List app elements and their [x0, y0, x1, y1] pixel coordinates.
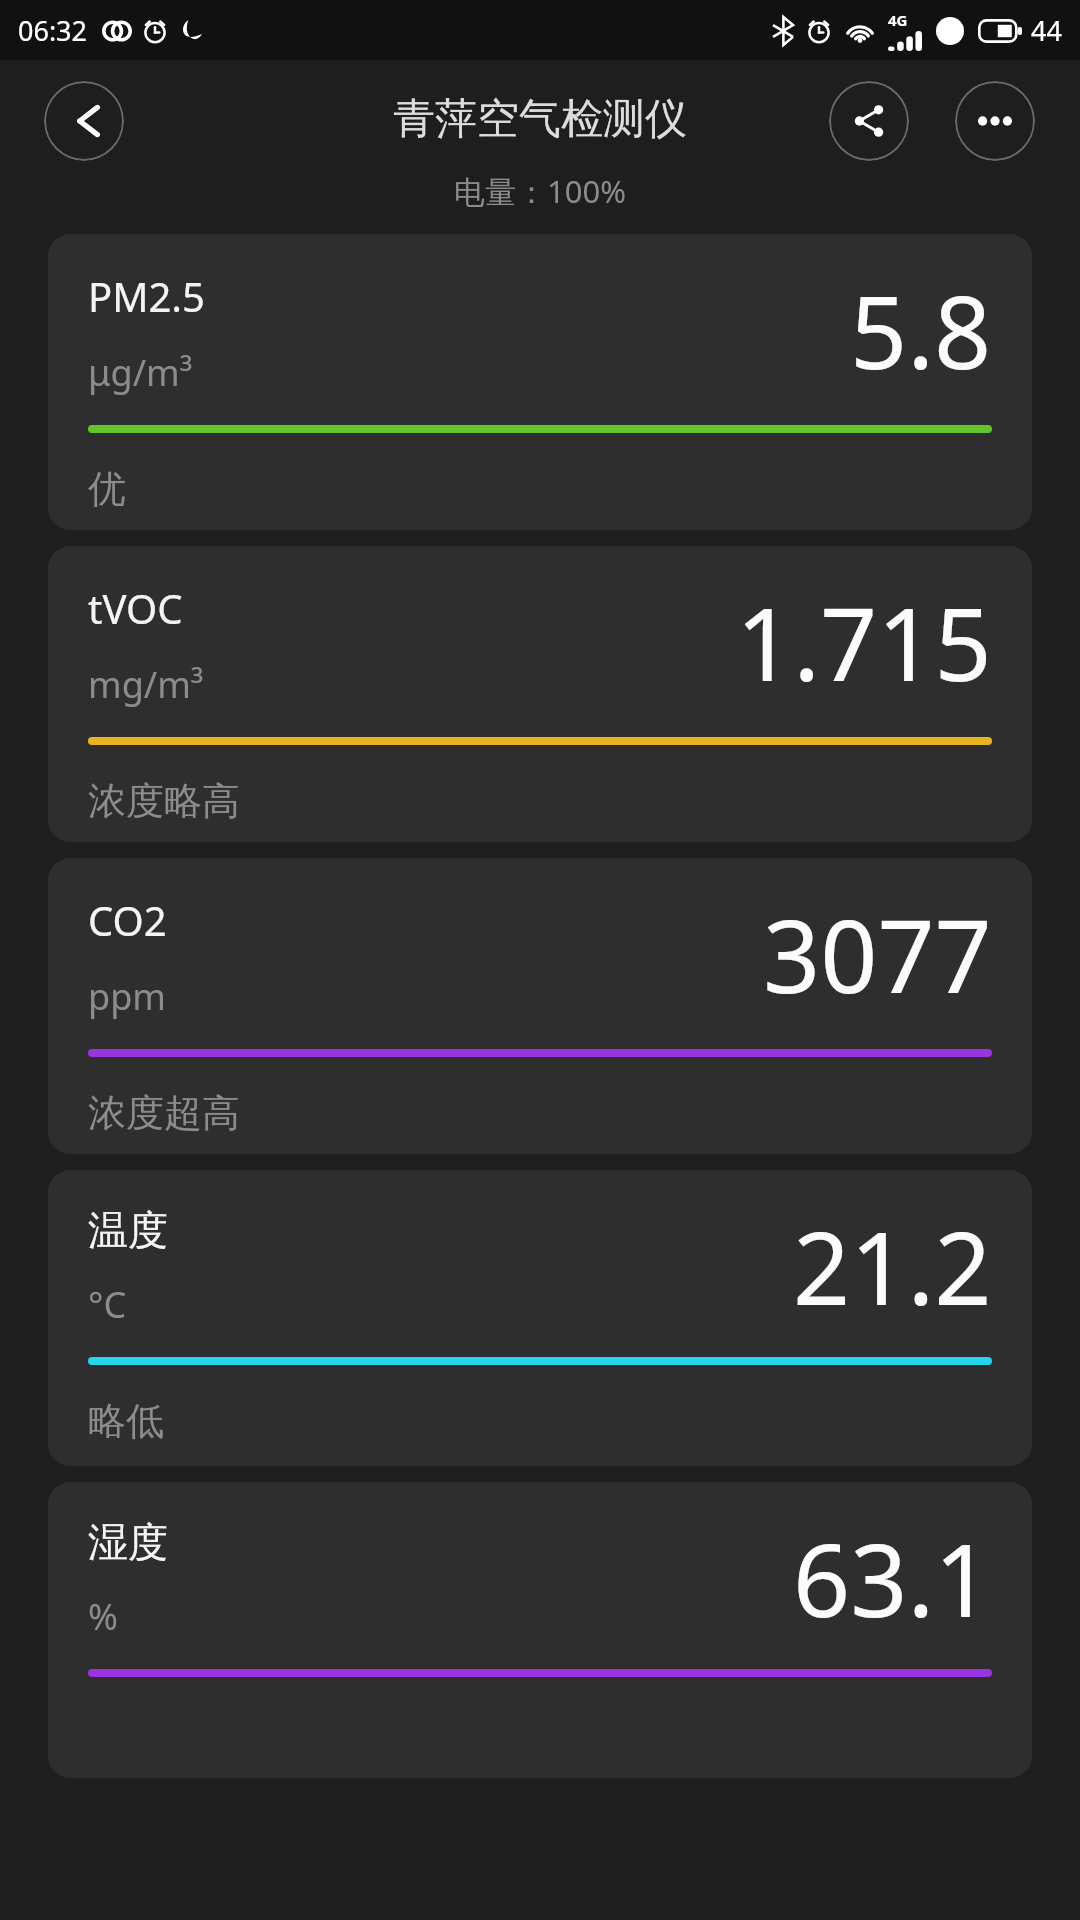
staticText: °C — [88, 1280, 127, 1329]
button[interactable]: PM2.5 — [48, 234, 1032, 530]
staticText: ppm — [88, 972, 166, 1021]
staticText: 21.2 — [793, 1198, 992, 1334]
staticText: tVOC — [88, 581, 183, 635]
staticText: 44 — [1031, 12, 1062, 49]
staticText: 06:32 — [18, 12, 88, 49]
staticText: 电量：100% — [454, 170, 626, 212]
staticText: 略低 — [88, 1397, 164, 1445]
staticText: PM2.5 — [88, 269, 205, 323]
staticText: 4G — [888, 10, 908, 30]
staticText: mg/m³ — [88, 660, 204, 709]
button[interactable]: CO2 — [48, 858, 1032, 1154]
button[interactable]: 湿度 — [48, 1482, 1032, 1778]
button[interactable]: Back — [44, 81, 124, 161]
staticText: 1.715 — [736, 574, 992, 710]
staticText: 浓度略高 — [88, 777, 240, 825]
button[interactable]: 温度 — [48, 1170, 1032, 1466]
button[interactable]: Share — [829, 81, 909, 161]
staticText: 5.8 — [850, 262, 992, 398]
staticText: 3077 — [763, 886, 992, 1022]
staticText: 湿度 — [88, 1517, 168, 1567]
button[interactable]: More options — [955, 81, 1035, 161]
staticText: 温度 — [88, 1205, 168, 1255]
staticText: 浓度超高 — [88, 1089, 240, 1137]
staticText: % — [88, 1592, 118, 1641]
staticText: 优 — [88, 465, 126, 513]
button[interactable]: tVOC — [48, 546, 1032, 842]
staticText: 青萍空气检测仪 — [393, 93, 687, 146]
staticText: 63.1 — [793, 1510, 992, 1646]
staticText: μg/m³ — [88, 348, 193, 397]
staticText: CO2 — [88, 893, 167, 947]
